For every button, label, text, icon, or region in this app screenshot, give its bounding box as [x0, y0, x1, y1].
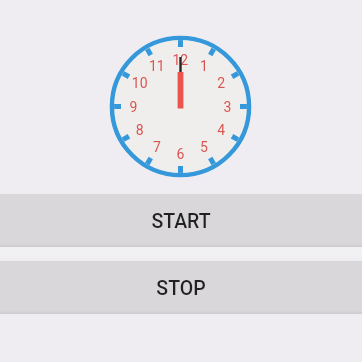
- staticText: START: [151, 210, 211, 233]
- button[interactable]: START: [0, 194, 362, 247]
- staticText: STOP: [156, 277, 206, 300]
- button[interactable]: STOP: [0, 261, 362, 314]
